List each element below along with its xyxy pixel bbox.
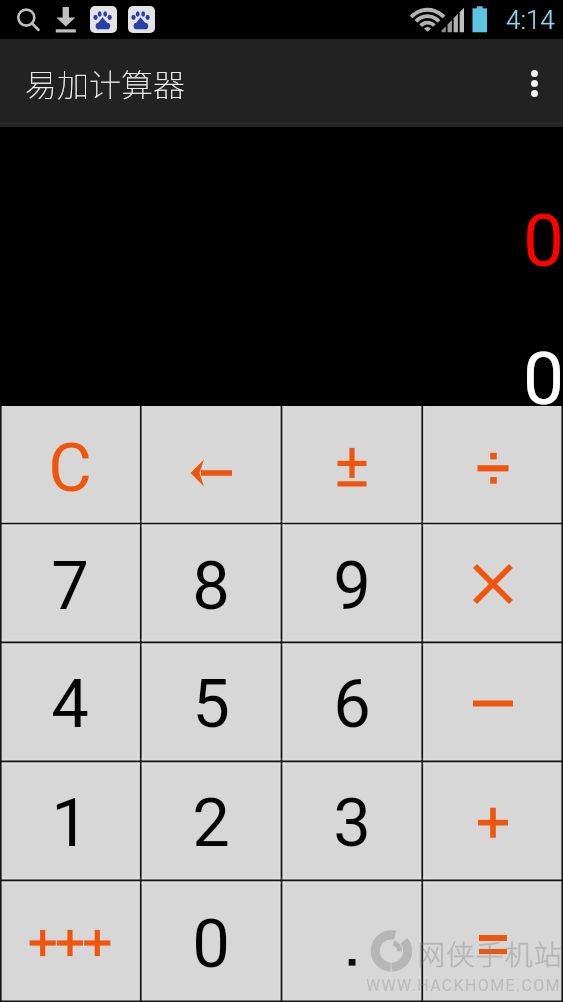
button[interactable]: Plus minus	[281, 406, 422, 524]
staticText: 6	[333, 665, 371, 744]
staticText: WWW.HACKHOME.COM	[366, 976, 561, 995]
button[interactable]: 0	[140, 880, 281, 1002]
button[interactable]: 8	[140, 524, 281, 643]
button[interactable]: Decimal point	[281, 880, 422, 1002]
staticText: 5	[192, 665, 230, 744]
button[interactable]: 4	[0, 642, 140, 761]
button[interactable]: Backspace	[140, 406, 281, 524]
button[interactable]	[0, 880, 140, 1002]
button[interactable]: Multiply	[422, 524, 563, 643]
staticText: 3	[333, 784, 371, 863]
button[interactable]: 1	[0, 761, 140, 880]
button[interactable]: Divide	[422, 406, 563, 524]
staticText: 2	[192, 784, 230, 863]
staticText: 网侠手机站	[417, 933, 563, 974]
button[interactable]: 5	[140, 642, 281, 761]
button[interactable]: 3	[281, 761, 422, 880]
button[interactable]: 2	[140, 761, 281, 880]
button[interactable]: C	[0, 406, 140, 524]
staticText: 8	[192, 547, 230, 626]
staticText: 9	[333, 547, 371, 626]
staticText: 0	[523, 198, 563, 284]
button[interactable]: Equals	[422, 880, 563, 1002]
staticText: 7	[51, 547, 89, 626]
staticText: C	[48, 429, 92, 508]
button[interactable]: 6	[281, 642, 422, 761]
button[interactable]: Subtract	[422, 642, 563, 761]
button[interactable]: Add	[422, 761, 563, 880]
staticText: 易加计算器	[25, 60, 186, 106]
staticText: 4:14	[506, 5, 555, 35]
button[interactable]: 9	[281, 524, 422, 643]
button[interactable]: More options	[505, 39, 563, 127]
button[interactable]: 7	[0, 524, 140, 643]
staticText: 0	[192, 905, 230, 984]
staticText: 0	[523, 336, 563, 422]
staticText: 1	[51, 784, 89, 863]
staticText: 4	[51, 665, 89, 744]
